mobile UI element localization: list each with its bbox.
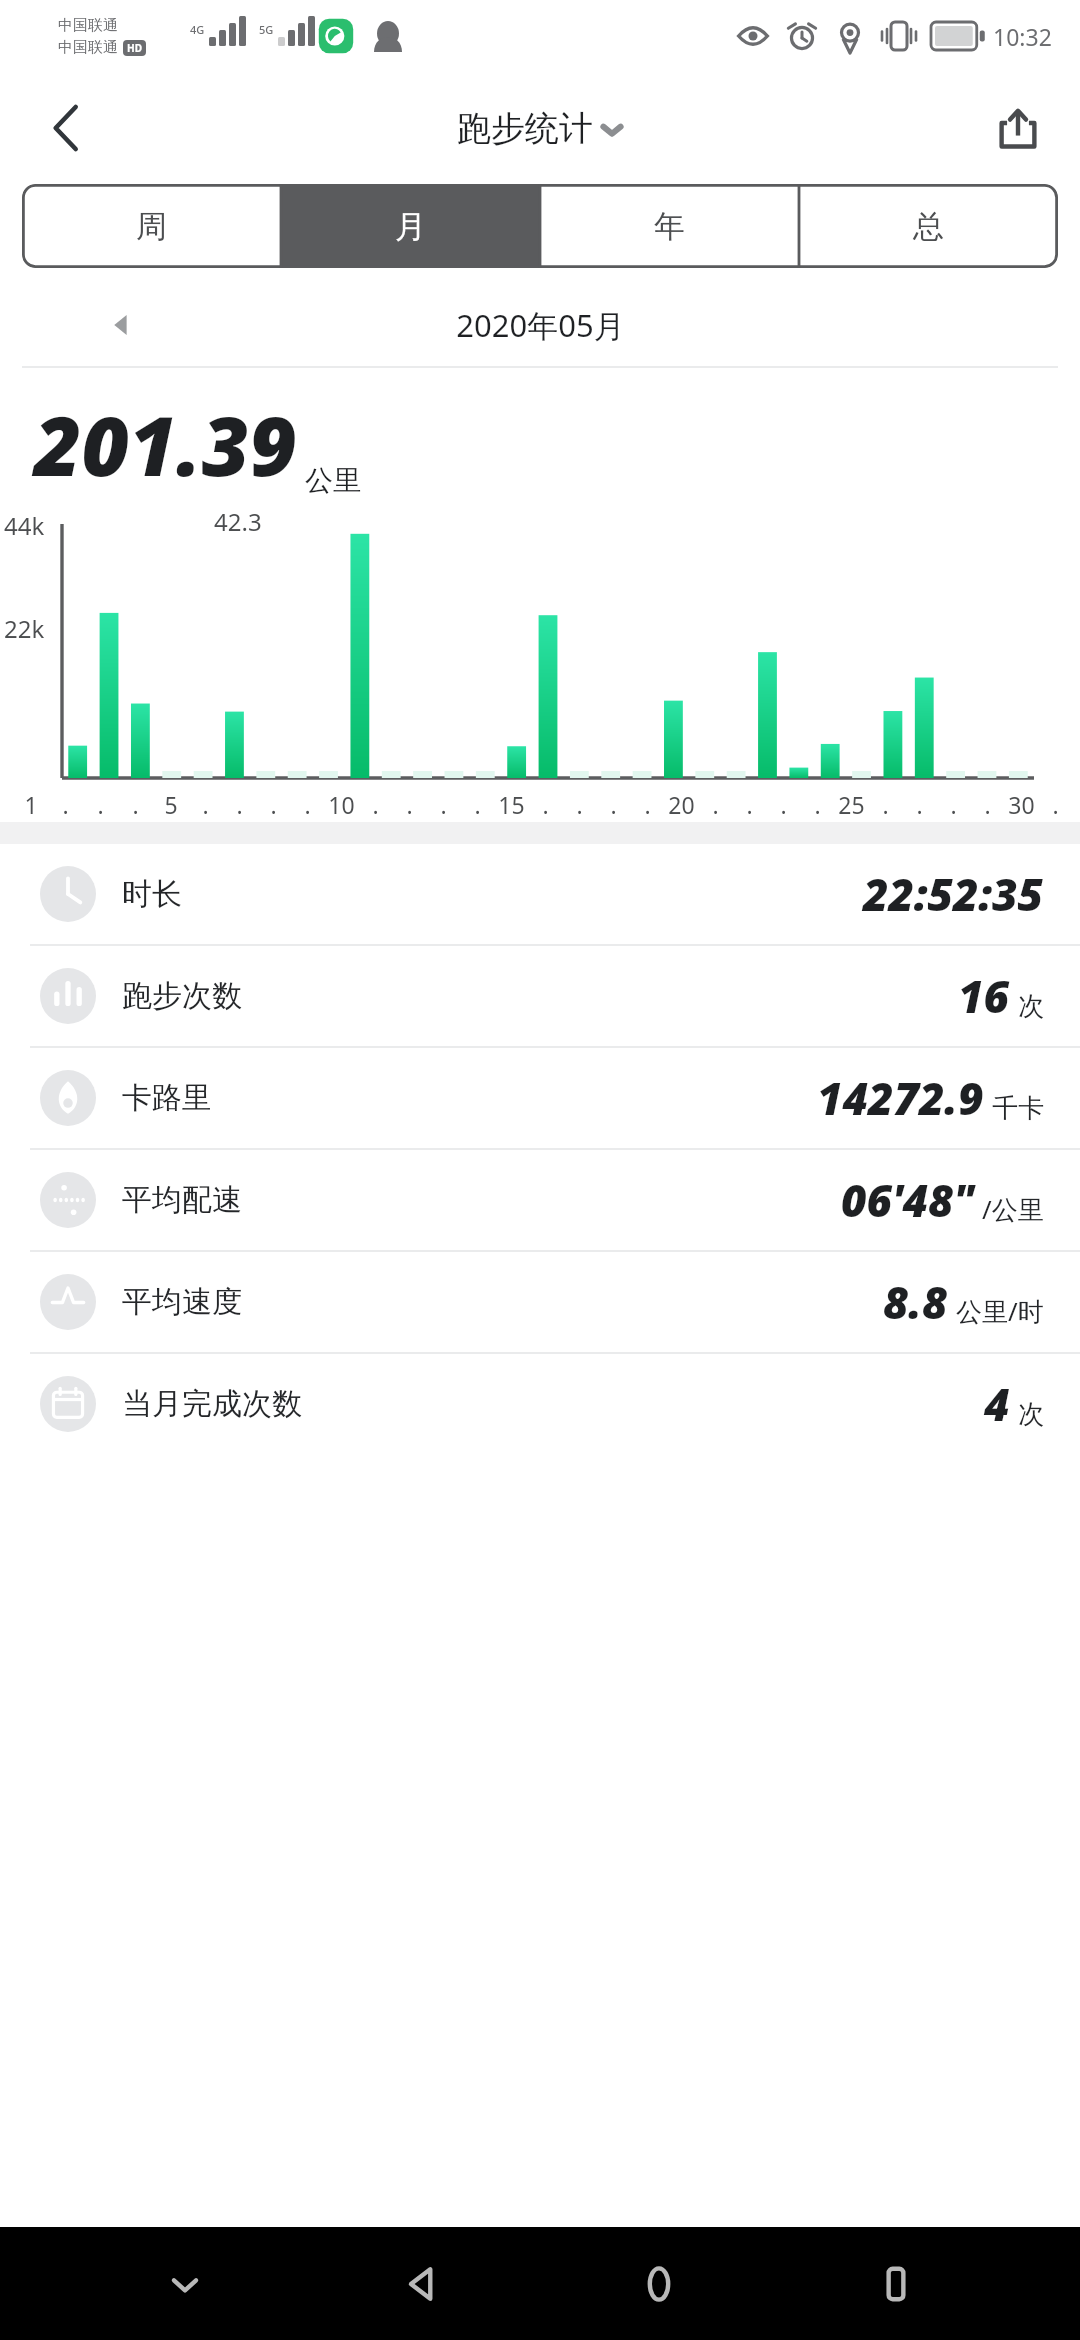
staticText: . bbox=[1052, 789, 1059, 820]
button[interactable]: Share bbox=[976, 86, 1060, 170]
staticText: . bbox=[202, 789, 209, 820]
staticText: 44k bbox=[4, 509, 45, 542]
staticText: 公里/时 bbox=[956, 1293, 1044, 1329]
button[interactable]: 当月完成次数 bbox=[0, 1354, 1080, 1454]
button[interactable]: Previous month bbox=[92, 296, 150, 354]
staticText: 22k bbox=[4, 612, 45, 645]
staticText: 跑步统计 bbox=[457, 107, 593, 150]
staticText: . bbox=[984, 789, 991, 820]
staticText: 次 bbox=[1018, 990, 1044, 1023]
button[interactable]: Back bbox=[20, 86, 104, 170]
staticText: . bbox=[132, 789, 139, 820]
staticText: 5 bbox=[164, 789, 178, 820]
staticText: 中国联通 bbox=[58, 38, 118, 57]
button[interactable]: 卡路里 bbox=[0, 1048, 1080, 1148]
staticText: . bbox=[542, 789, 549, 820]
button[interactable]: 平均配速 bbox=[0, 1150, 1080, 1250]
staticText: 千卡 bbox=[992, 1092, 1044, 1125]
staticText: 4G bbox=[190, 22, 205, 37]
staticText: . bbox=[406, 789, 413, 820]
staticText: 22:52:35 bbox=[863, 864, 1044, 924]
staticText: . bbox=[236, 789, 243, 820]
staticText: . bbox=[372, 789, 379, 820]
staticText: . bbox=[440, 789, 447, 820]
button[interactable]: 总 bbox=[799, 184, 1058, 268]
staticText: . bbox=[814, 789, 821, 820]
staticText: 15 bbox=[498, 789, 525, 820]
staticText: 2020年05月 bbox=[456, 304, 625, 346]
staticText: 次 bbox=[1018, 1398, 1044, 1431]
staticText: . bbox=[916, 789, 923, 820]
staticText: 42.3 bbox=[214, 505, 262, 538]
staticText: 16 bbox=[958, 966, 1010, 1026]
button[interactable]: 月 bbox=[281, 184, 540, 268]
button[interactable]: 周 bbox=[22, 184, 281, 268]
button[interactable]: 跑步次数 bbox=[0, 946, 1080, 1046]
staticText: 当月完成次数 bbox=[122, 1385, 302, 1423]
staticText: 4 bbox=[984, 1374, 1010, 1434]
staticText: 平均配速 bbox=[122, 1181, 242, 1219]
staticText: HD bbox=[127, 41, 142, 55]
staticText: 8.8 bbox=[883, 1272, 948, 1332]
staticText: . bbox=[62, 789, 69, 820]
staticText: 06'48" bbox=[841, 1170, 974, 1230]
staticText: 14272.9 bbox=[817, 1068, 984, 1128]
staticText: 总 bbox=[913, 207, 944, 246]
staticText: . bbox=[576, 789, 583, 820]
staticText: . bbox=[644, 789, 651, 820]
staticText: 5G bbox=[259, 22, 274, 37]
staticText: 跑步次数 bbox=[122, 977, 242, 1015]
staticText: 卡路里 bbox=[122, 1079, 212, 1117]
staticText: 201.39 bbox=[34, 388, 297, 500]
staticText: . bbox=[882, 789, 889, 820]
button[interactable]: 平均速度 bbox=[0, 1252, 1080, 1352]
staticText: 公里 bbox=[305, 463, 361, 498]
button[interactable]: Home bbox=[540, 2227, 777, 2340]
staticText: 月 bbox=[395, 207, 426, 246]
staticText: . bbox=[304, 789, 311, 820]
staticText: . bbox=[746, 789, 753, 820]
staticText: . bbox=[97, 789, 104, 820]
staticText: 周 bbox=[136, 207, 167, 246]
button[interactable]: Hide keyboard bbox=[66, 2227, 303, 2340]
staticText: 20 bbox=[668, 789, 695, 820]
button[interactable]: 跑步统计 bbox=[457, 107, 624, 150]
button[interactable]: Recent apps bbox=[777, 2227, 1014, 2340]
staticText: . bbox=[610, 789, 617, 820]
staticText: 1 bbox=[24, 789, 38, 820]
staticText: 年 bbox=[654, 207, 685, 246]
staticText: . bbox=[712, 789, 719, 820]
staticText: . bbox=[950, 789, 957, 820]
staticText: 25 bbox=[838, 789, 865, 820]
button[interactable]: Back bbox=[303, 2227, 540, 2340]
staticText: 平均速度 bbox=[122, 1283, 242, 1321]
staticText: . bbox=[270, 789, 277, 820]
staticText: 10:32 bbox=[993, 21, 1052, 52]
staticText: /公里 bbox=[982, 1191, 1044, 1227]
staticText: 时长 bbox=[122, 875, 182, 913]
button[interactable]: 年 bbox=[540, 184, 799, 268]
staticText: . bbox=[780, 789, 787, 820]
staticText: . bbox=[474, 789, 481, 820]
staticText: 中国联通 bbox=[58, 16, 118, 35]
button[interactable]: 时长 bbox=[0, 844, 1080, 944]
staticText: 10 bbox=[328, 789, 355, 820]
staticText: 30 bbox=[1008, 789, 1035, 820]
